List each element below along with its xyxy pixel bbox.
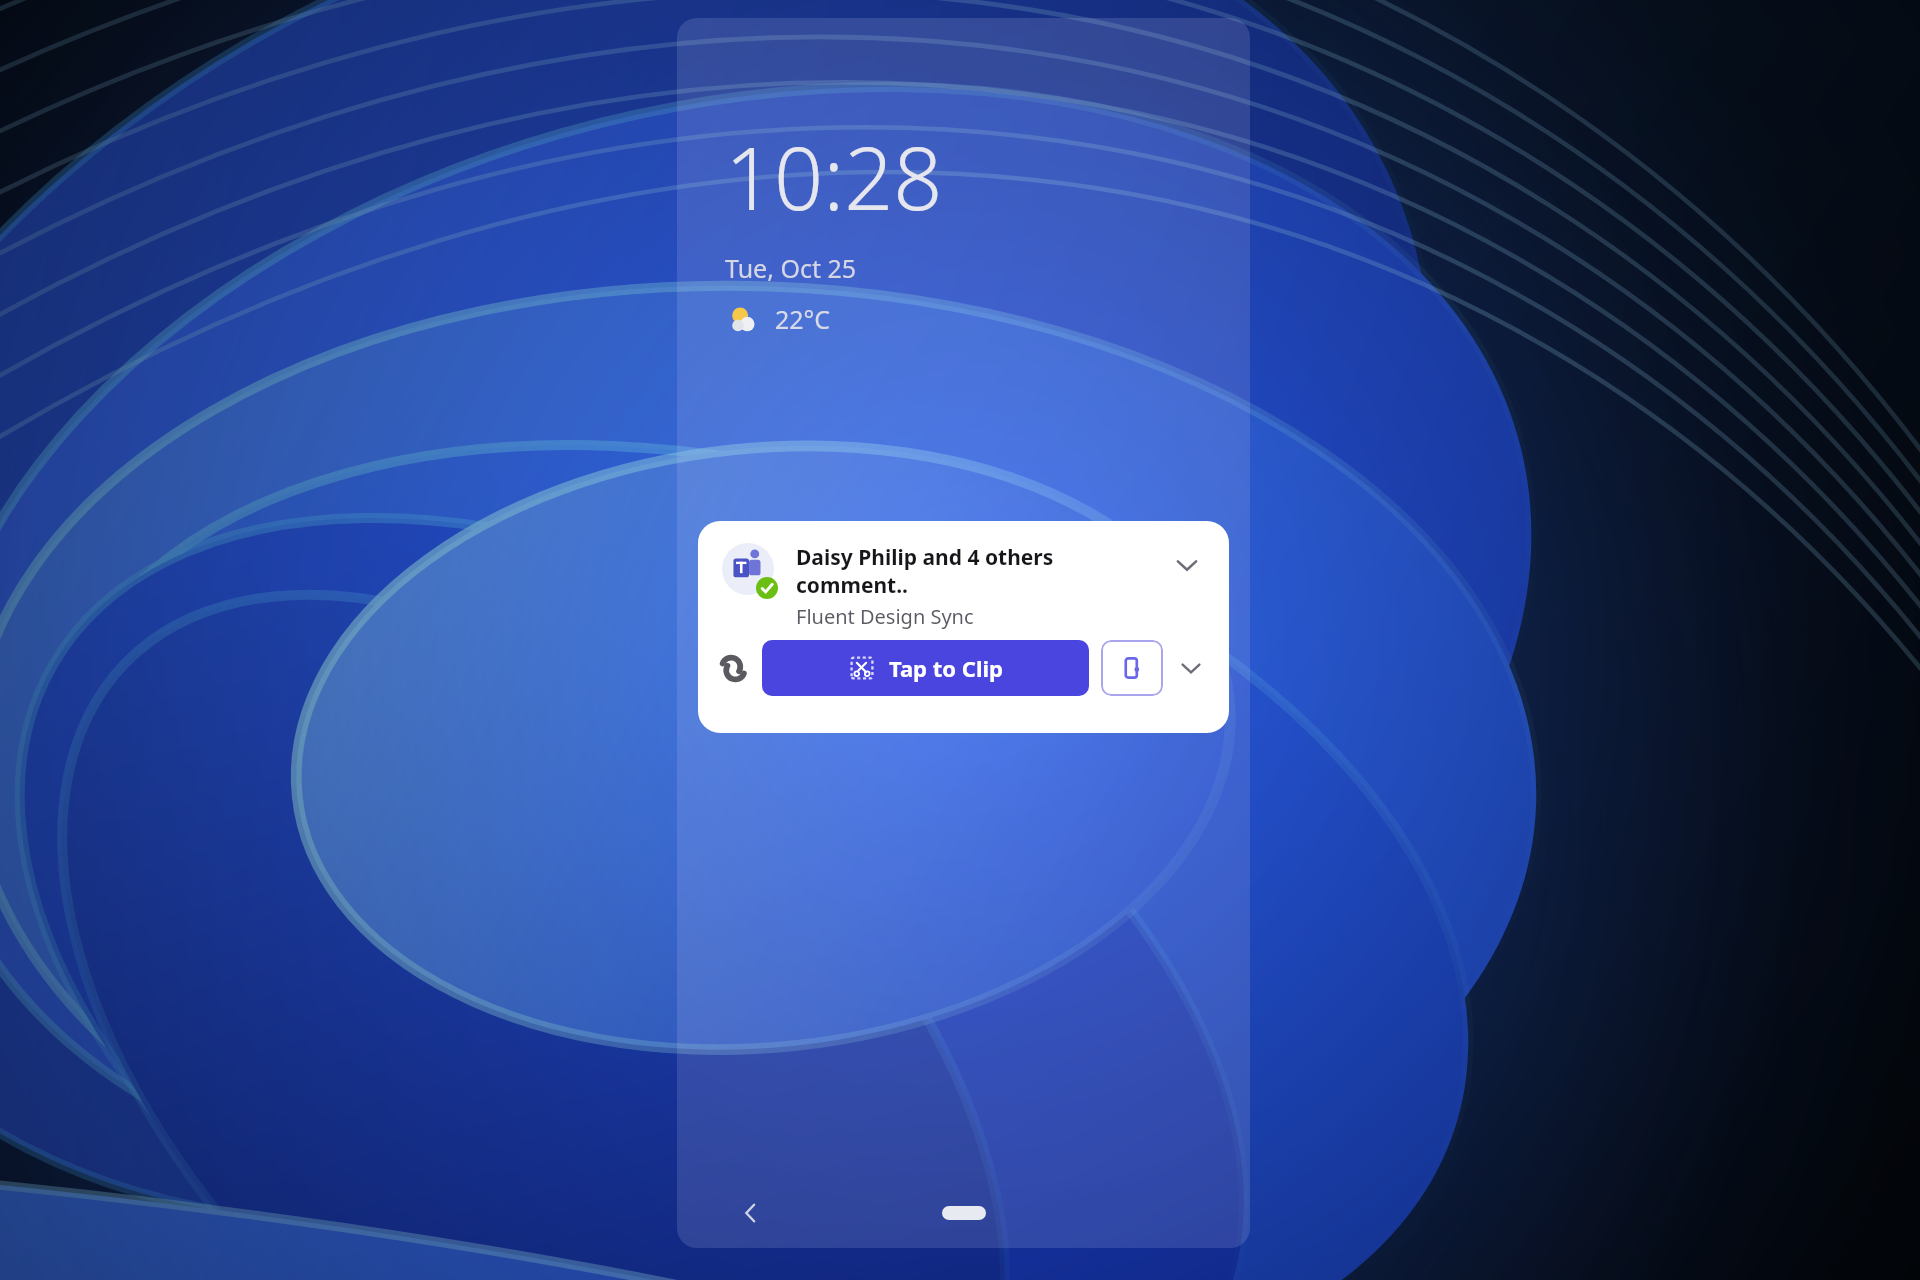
staticText: Tue, Oct 25 (725, 251, 857, 285)
staticText: 10:28 (725, 118, 943, 235)
button[interactable]: Home (942, 1206, 986, 1220)
staticText: Tap to Clip (889, 653, 1003, 683)
button[interactable]: Send to phone (1101, 640, 1163, 696)
staticText: 22°C (775, 302, 831, 336)
button[interactable]: More actions (1171, 648, 1211, 688)
staticText: Daisy Philip and 4 others comment.. (796, 543, 1054, 599)
button[interactable]: Back (721, 1183, 781, 1243)
staticText: Fluent Design Sync (796, 603, 974, 630)
other: App (720, 655, 746, 681)
button[interactable]: Daisy Philip and 4 others comment.. (698, 521, 1229, 733)
button[interactable]: Tap to Clip (762, 640, 1089, 696)
button[interactable]: Expand notification (1165, 543, 1209, 587)
